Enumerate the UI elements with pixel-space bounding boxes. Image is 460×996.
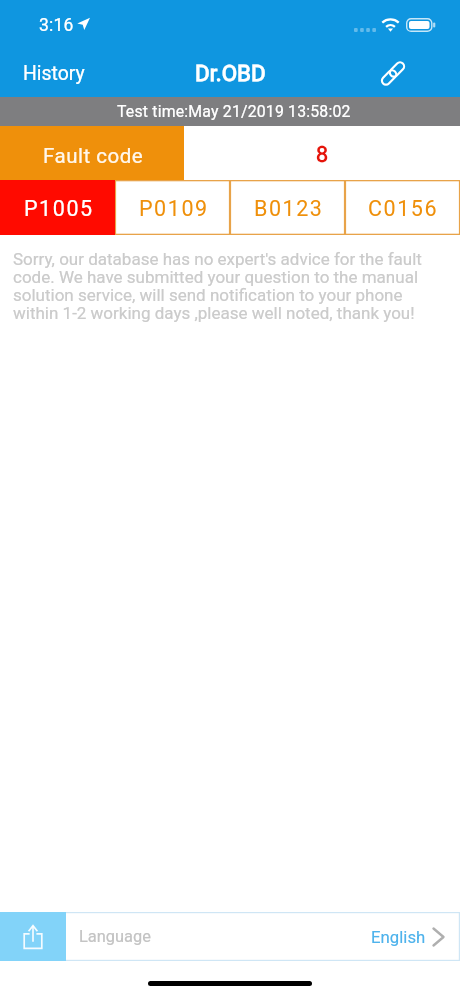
button[interactable]: B0123 <box>230 180 345 235</box>
staticText: P1005 <box>24 196 94 221</box>
button[interactable]: Share <box>0 912 66 961</box>
button[interactable]: P1005 <box>0 180 115 235</box>
button[interactable]: P0109 <box>115 180 230 235</box>
staticText: P0109 <box>139 196 209 221</box>
button[interactable]: Fault code <box>0 126 184 180</box>
staticText: Language <box>79 927 151 946</box>
staticText: English <box>371 927 426 947</box>
staticText: within 1-2 working days ,please well not… <box>13 304 415 322</box>
button[interactable]: History <box>0 56 97 91</box>
staticText: solution service, will send notification… <box>13 286 403 304</box>
staticText: Sorry, our database has no expert's advi… <box>13 250 422 268</box>
staticText: 3:16 <box>39 15 74 36</box>
button[interactable]: Link <box>374 52 411 94</box>
staticText: C0156 <box>368 196 439 221</box>
staticText: Fault code <box>43 144 144 168</box>
staticText: History <box>23 62 85 85</box>
staticText: Dr.OBD <box>195 60 266 86</box>
button[interactable]: C0156 <box>345 180 460 235</box>
button[interactable]: Language <box>66 912 460 961</box>
staticText: code. We have submitted your question to… <box>13 268 419 286</box>
staticText: B0123 <box>254 196 324 221</box>
staticText: Test time:May 21/2019 13:58:02 <box>117 102 351 121</box>
staticText: 8 <box>316 142 329 167</box>
